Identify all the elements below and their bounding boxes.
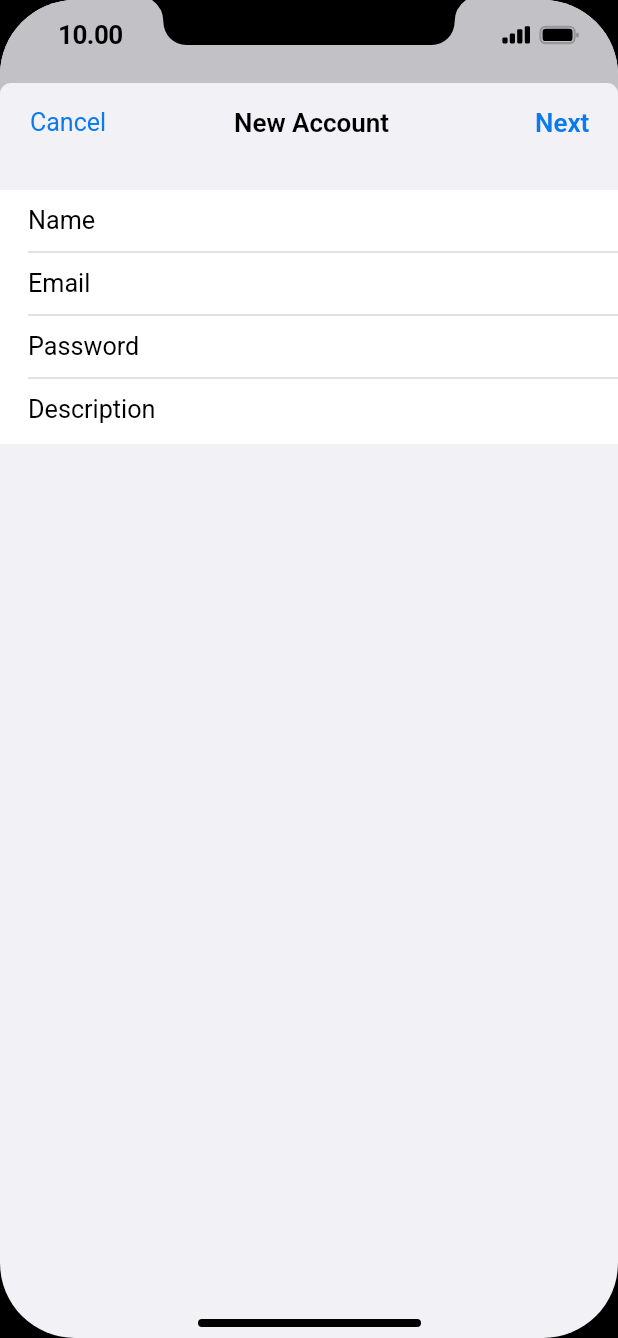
staticText: New Account: [234, 108, 389, 138]
staticText: Cancel: [30, 108, 107, 137]
staticText: Next: [535, 108, 590, 138]
staticText: 10.00: [58, 20, 123, 50]
staticText: Description: [28, 395, 156, 425]
button[interactable]: Email: [0, 253, 618, 316]
button[interactable]: Password: [0, 316, 618, 379]
staticText: Email: [28, 269, 91, 299]
staticText: Name: [28, 206, 96, 236]
staticText: Password: [28, 332, 140, 362]
button[interactable]: Next: [523, 99, 602, 147]
button[interactable]: Name: [0, 190, 618, 253]
button[interactable]: Cancel: [18, 99, 119, 146]
other: Cellular signal and battery status: [0, 0, 618, 99]
button[interactable]: Description: [0, 379, 618, 442]
